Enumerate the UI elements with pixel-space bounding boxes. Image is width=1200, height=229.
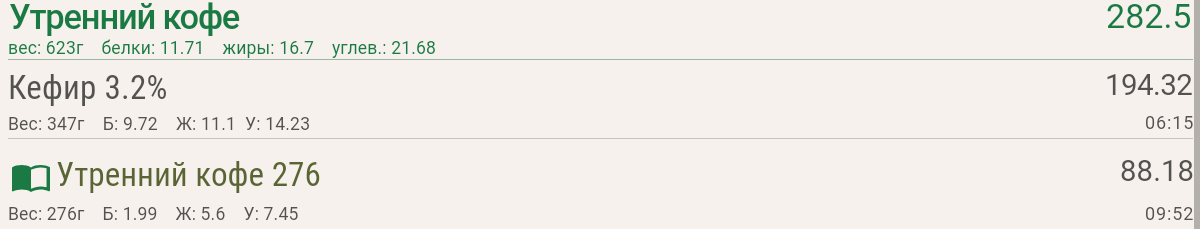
staticText: 09:52 bbox=[1145, 203, 1195, 224]
staticText: Кефир 3.2% bbox=[8, 68, 168, 107]
staticText: 06:15 bbox=[1145, 112, 1195, 133]
staticText: 194.32 bbox=[1105, 68, 1193, 103]
staticText: Вес: 276г Б: 1.99 Ж: 5.6 У: 7.45 bbox=[8, 204, 299, 225]
staticText: 282.5 bbox=[1106, 0, 1192, 36]
staticText: Утренний кофе 276 bbox=[56, 155, 321, 194]
button[interactable]: Recipe bbox=[0, 139, 1200, 229]
other: Recipe bbox=[12, 165, 50, 192]
staticText: Утренний кофе bbox=[9, 0, 240, 37]
button[interactable]: Кефир 3.2% bbox=[0, 60, 1200, 138]
button[interactable]: Утренний кофе bbox=[0, 0, 1200, 59]
staticText: 88.18 bbox=[1120, 154, 1195, 188]
staticText: вес: 623г белки: 11.71 жиры: 16.7 углев.… bbox=[8, 38, 436, 59]
staticText: Вес: 347г Б: 9.72 Ж: 11.1 У: 14.23 bbox=[8, 114, 311, 135]
